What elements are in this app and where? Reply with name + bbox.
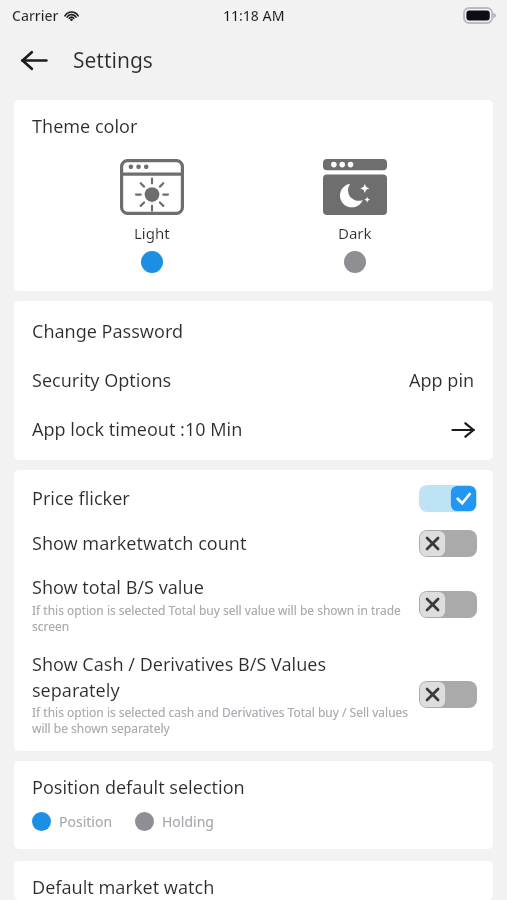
- button[interactable]: Show Cash / Derivatives B/S Values separ…: [14, 643, 493, 745]
- staticText: Show Cash / Derivatives B/S Values separ…: [32, 652, 409, 702]
- button[interactable]: Toggle off: [419, 530, 477, 557]
- staticText: Position default selection: [32, 775, 245, 800]
- staticText: 11:18 AM: [223, 6, 285, 25]
- button[interactable]: Show total B/S value: [14, 566, 493, 643]
- button[interactable]: Security Options: [14, 356, 493, 405]
- button[interactable]: App lock timeout :10 Min: [14, 405, 493, 454]
- other: Open: [451, 418, 475, 442]
- staticText: Change Password: [32, 319, 184, 344]
- staticText: Security Options: [32, 368, 172, 393]
- staticText: Price flicker: [32, 486, 130, 511]
- staticText: Settings: [73, 46, 153, 75]
- staticText: App pin: [409, 368, 475, 393]
- staticText: If this option is selected cash and Deri…: [32, 704, 409, 736]
- button[interactable]: Toggle on: [419, 485, 477, 512]
- staticText: Dark: [338, 223, 372, 243]
- button[interactable]: Toggle off: [419, 591, 477, 618]
- staticText: Holding: [162, 812, 214, 831]
- staticText: Carrier: [12, 6, 59, 25]
- button[interactable]: Dark theme: [313, 157, 397, 275]
- staticText: Show marketwatch count: [32, 531, 247, 556]
- staticText: Default market watch: [32, 875, 215, 900]
- staticText: Theme color: [32, 114, 138, 139]
- button[interactable]: Price flicker: [14, 476, 493, 521]
- staticText: App lock timeout :10 Min: [32, 417, 243, 442]
- button[interactable]: Light theme: [110, 157, 194, 275]
- button[interactable]: Toggle off: [419, 681, 477, 708]
- button[interactable]: Back: [11, 37, 57, 83]
- button[interactable]: Show marketwatch count: [14, 521, 493, 566]
- staticText: Show total B/S value: [32, 575, 204, 600]
- staticText: Light: [134, 223, 170, 243]
- staticText: If this option is selected Total buy sel…: [32, 602, 409, 634]
- staticText: Position: [59, 812, 113, 831]
- button[interactable]: Change Password: [14, 307, 493, 356]
- button[interactable]: Position: [32, 810, 113, 833]
- button[interactable]: Holding: [135, 810, 214, 833]
